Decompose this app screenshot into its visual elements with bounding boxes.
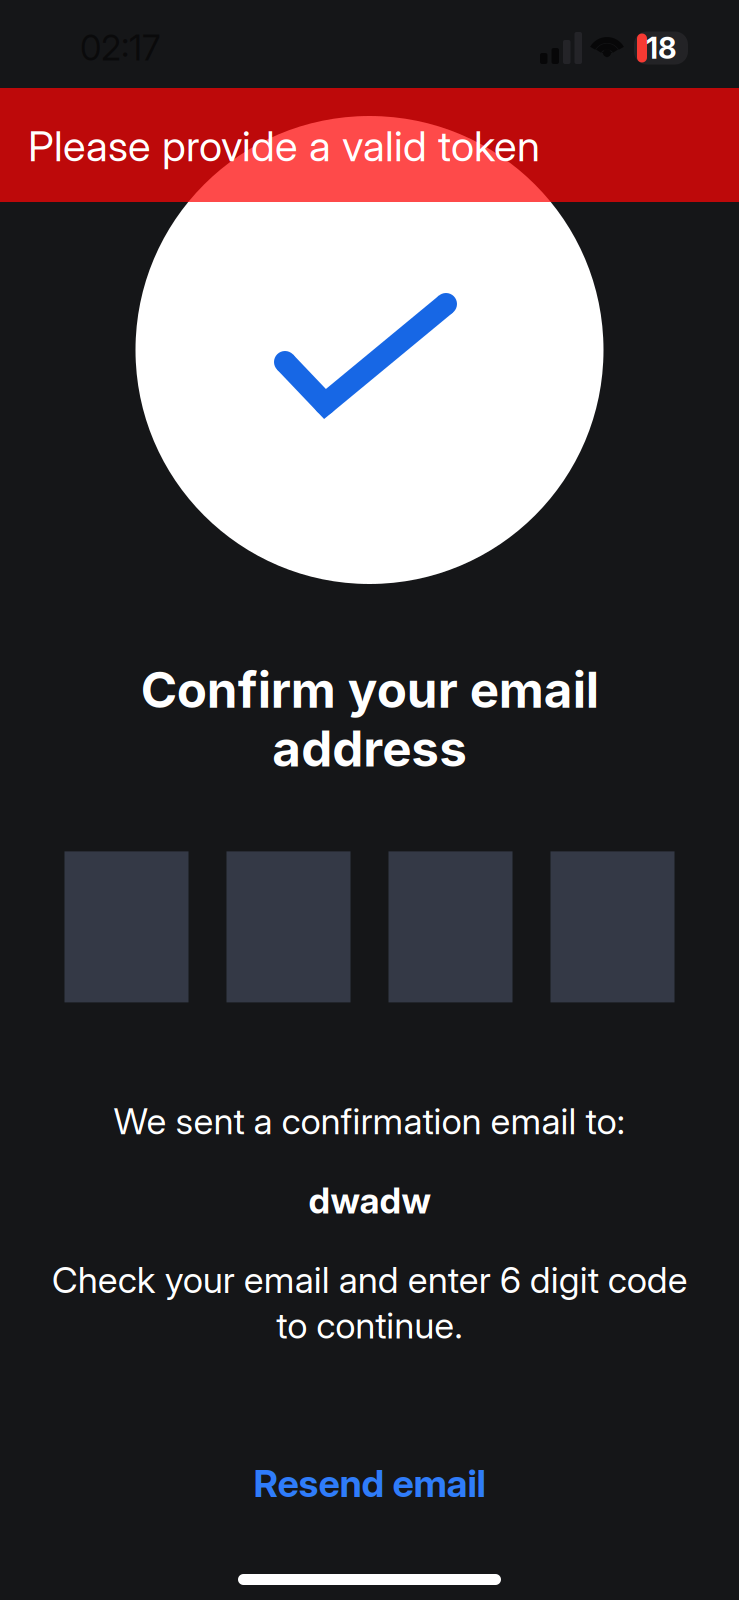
button[interactable]: Resend email <box>229 1451 509 1515</box>
button[interactable]: Please provide a valid token <box>0 88 739 202</box>
staticText: 02:17 <box>80 27 160 69</box>
staticText: Check your email and enter 6 digit code … <box>51 1258 687 1347</box>
staticText: 18 <box>646 30 677 66</box>
staticText: We sent a confirmation email to: <box>113 1099 625 1143</box>
staticText: Confirm your email address <box>140 660 598 778</box>
staticText: dwadw <box>308 1179 430 1222</box>
staticText: Please provide a valid token <box>28 121 540 171</box>
staticText: Resend email <box>253 1460 485 1506</box>
